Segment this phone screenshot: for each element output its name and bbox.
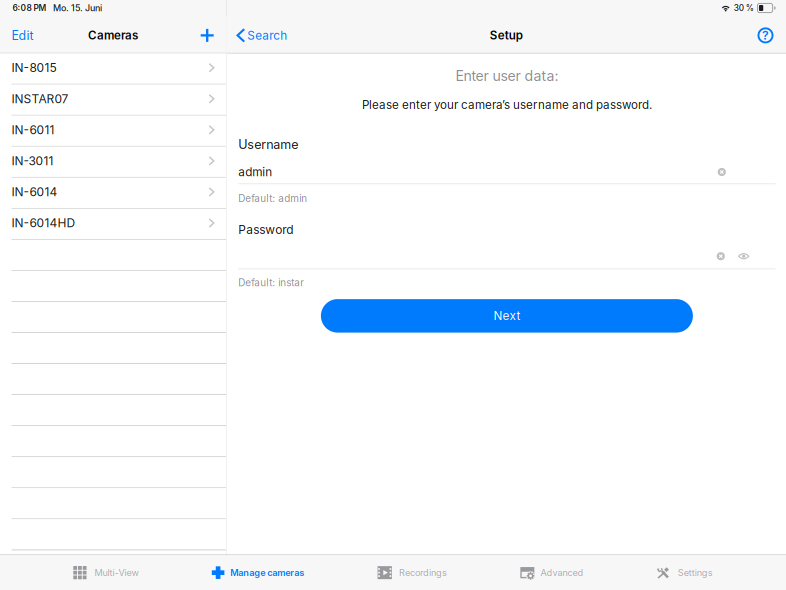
button[interactable]: IN-6011 [0, 116, 226, 147]
button[interactable]: IN-8015 [0, 53, 226, 85]
button[interactable]: Help [748, 17, 786, 54]
staticText: Edit [12, 28, 34, 43]
staticText: IN-8015 [11, 60, 56, 75]
button[interactable]: IN-6014 [0, 178, 226, 209]
staticText: Password [238, 222, 293, 237]
staticText: 6:08 PM [12, 3, 46, 13]
staticText: Cameras [88, 28, 138, 42]
button[interactable]: Settings [657, 555, 713, 590]
staticText: Default: instar [238, 277, 304, 288]
button[interactable]: Edit [0, 17, 45, 54]
button[interactable]: Manage cameras [212, 555, 304, 590]
staticText: IN-6014HD [11, 216, 75, 230]
staticText: Enter user data: [455, 67, 558, 84]
button[interactable]: Search [227, 17, 296, 54]
staticText: Multi-View [94, 567, 138, 578]
staticText: Setup [490, 28, 523, 42]
button[interactable]: Show password [725, 253, 775, 259]
button[interactable]: IN-6014HD [0, 209, 226, 240]
staticText: INSTAR07 [11, 91, 68, 106]
staticText: IN-6011 [11, 123, 54, 137]
staticText: Username [238, 137, 298, 152]
staticText: Default: admin [238, 192, 307, 204]
button[interactable]: INSTAR07 [0, 84, 226, 116]
staticText: Search [247, 28, 287, 42]
staticText: Please enter your camera’s username and … [362, 98, 652, 112]
button[interactable]: Add camera [190, 17, 226, 54]
staticText: Advanced [540, 567, 583, 578]
staticText: Manage cameras [230, 567, 304, 578]
button[interactable]: Recordings [378, 555, 447, 590]
staticText: admin [238, 165, 272, 179]
button[interactable]: IN-3011 [0, 147, 226, 178]
staticText: IN-3011 [11, 154, 53, 168]
staticText: Settings [678, 567, 713, 578]
staticText: Mo. 15. Juni [53, 3, 102, 13]
button[interactable]: Next [321, 299, 693, 333]
button[interactable]: Multi-View [73, 555, 138, 590]
button[interactable]: Clear username [718, 168, 775, 176]
button[interactable]: Advanced [520, 555, 583, 590]
staticText: Recordings [399, 567, 447, 578]
staticText: Next [493, 309, 520, 323]
button[interactable]: Clear password [717, 252, 725, 260]
staticText: 30 % [734, 3, 754, 13]
staticText: IN-6014 [11, 185, 57, 199]
staticText: ? [762, 28, 769, 43]
